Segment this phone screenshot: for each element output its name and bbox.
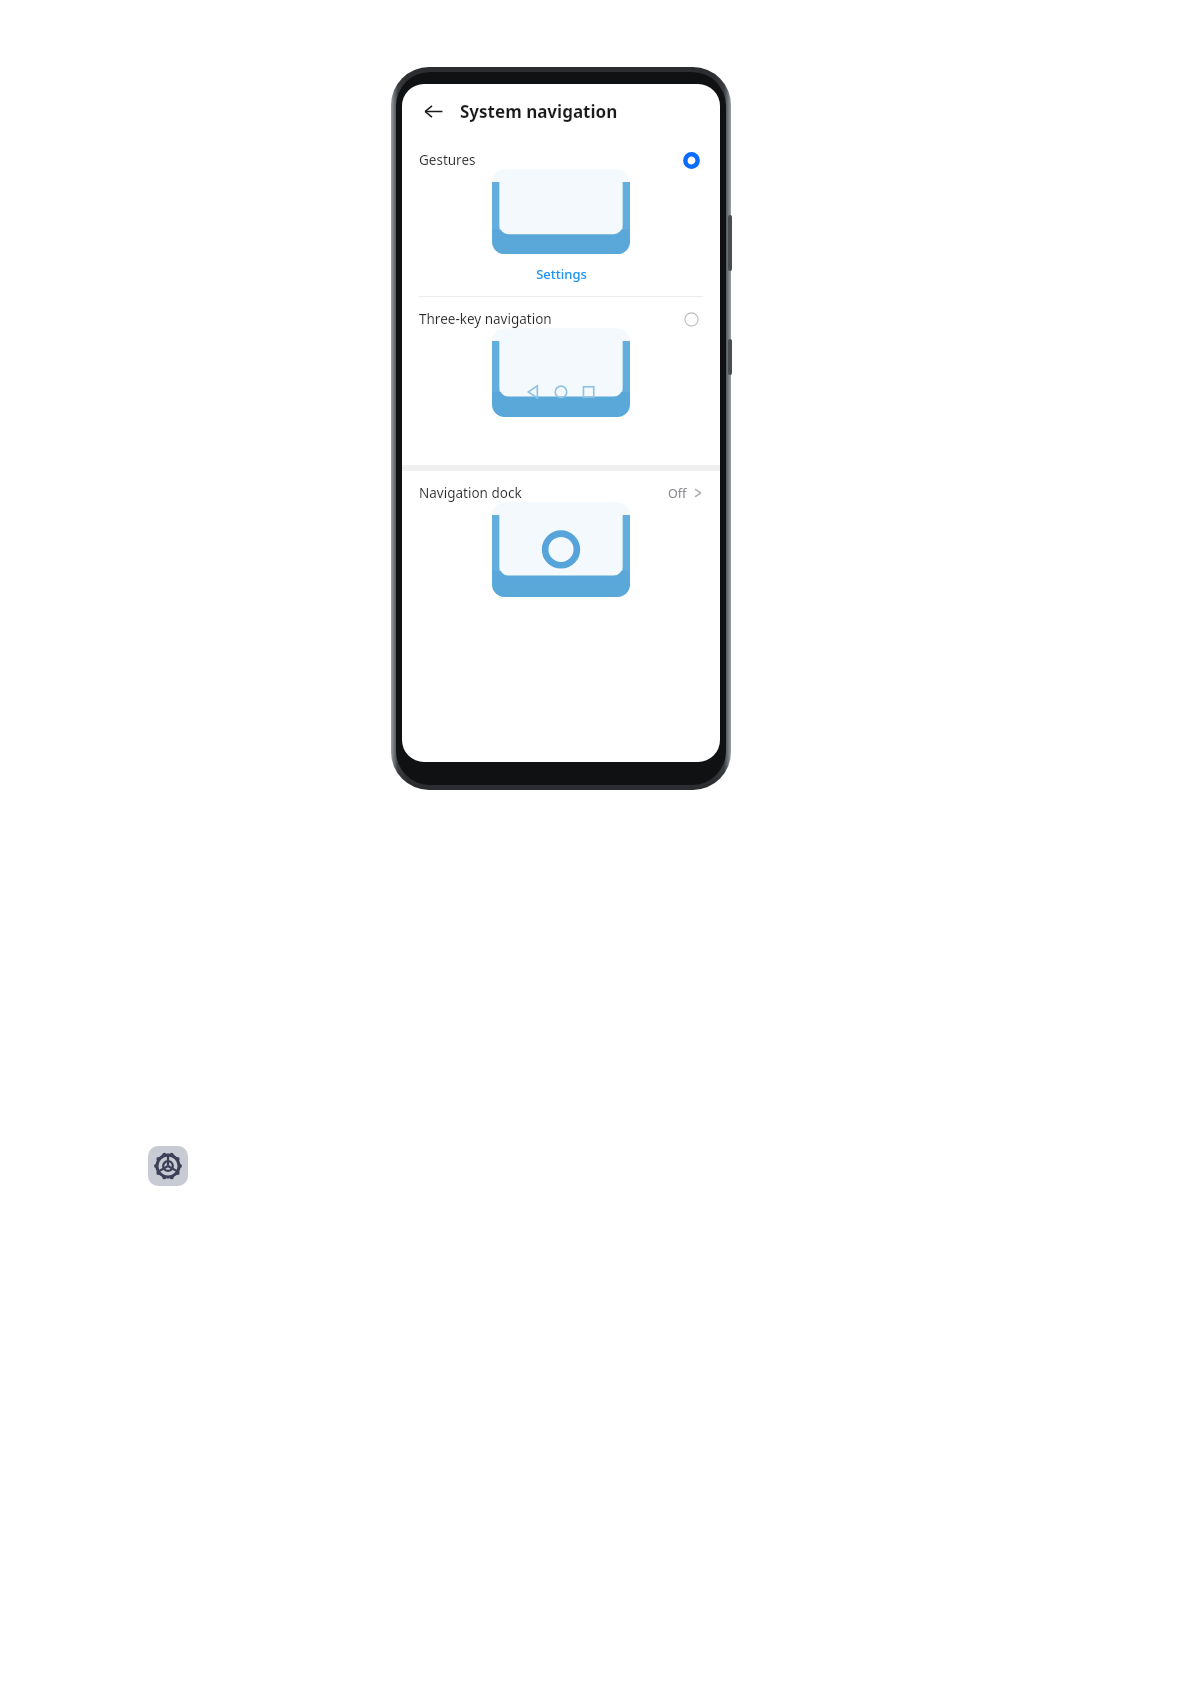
button[interactable]: Navigation dock [402, 471, 720, 515]
button[interactable]: Settings [402, 262, 720, 286]
staticText: Gestures [419, 151, 476, 169]
button[interactable]: Three-key navigation [402, 297, 720, 341]
button[interactable]: Not selected [679, 307, 703, 331]
staticText: Navigation dock [419, 484, 522, 502]
staticText: Settings [536, 265, 587, 283]
button[interactable]: Gestures [402, 138, 720, 182]
staticText: System navigation [460, 100, 618, 123]
button[interactable]: Back [418, 96, 448, 126]
button[interactable]: Selected [679, 148, 703, 172]
staticText: Off [668, 485, 687, 502]
staticText: Three-key navigation [419, 310, 552, 328]
button[interactable]: Settings app icon [148, 1146, 188, 1186]
